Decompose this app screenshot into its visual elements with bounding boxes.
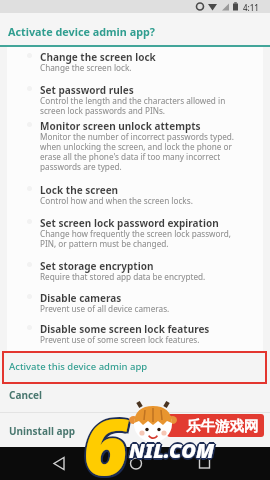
staticText: NIL.COM [130,436,216,463]
staticText: Monitor screen unlock attempts [40,119,201,133]
staticText: Control the length and the characters al… [40,95,226,106]
staticText: NIL.COM [127,437,213,464]
staticText: Prevent use of all device cameras. [40,303,170,314]
staticText: 6 [83,394,129,480]
staticText: Control how and when the screen locks. [40,195,193,206]
staticText: 乐牛游戏网 [186,417,259,435]
staticText: Set storage encryption [40,259,154,273]
staticText: Set password rules [40,83,134,97]
staticText: Lock the screen [40,183,119,197]
staticText: NIL.COM [128,438,214,465]
staticText: 6 [82,391,128,480]
staticText: Monitor the number of incorrect password… [40,131,235,142]
button[interactable] [0,413,270,447]
staticText: 6 [82,394,128,480]
staticText: 4:11 [243,2,259,13]
staticText: NIL.COM [129,435,215,462]
staticText: when unlocking the screen, and lock the … [40,141,232,152]
staticText: 6 [83,390,129,480]
staticText: PIN, or pattern must be changed. [40,238,169,249]
staticText: 6 [85,394,131,480]
staticText: 6 [85,392,131,480]
staticText: NIL.COM [129,439,215,466]
staticText: Uninstall app [9,424,76,438]
staticText: Disable cameras [40,291,122,305]
staticText: NIL.COM [128,436,214,463]
staticText: 6 [85,391,131,480]
staticText: Change how frequently the screen lock pa… [40,228,231,239]
staticText: 6 [81,392,127,480]
staticText: Set screen lock password expiration [40,216,219,230]
staticText: NIL.COM [131,437,217,464]
staticText: NIL.COM [130,438,216,465]
staticText: Cancel [9,388,43,402]
staticText: NIL.COM [129,437,215,464]
button[interactable] [2,351,267,384]
button[interactable] [0,385,270,412]
staticText: 6 [83,392,129,480]
staticText: Activate device admin app? [8,24,155,39]
staticText: Change the screen lock [40,50,156,64]
staticText: Prevent use of some screen lock features… [40,334,200,345]
staticText: Require that stored app data be encrypte… [40,271,206,282]
staticText: Change the screen lock. [40,62,132,73]
staticText: Disable some screen lock features [40,322,210,336]
staticText: erase all the phone's data if too many i… [40,151,221,162]
staticText: screen lock passwords and PINs. [40,105,166,116]
staticText: Activate this device admin app [9,360,148,373]
staticText: passwords are typed. [40,161,122,172]
